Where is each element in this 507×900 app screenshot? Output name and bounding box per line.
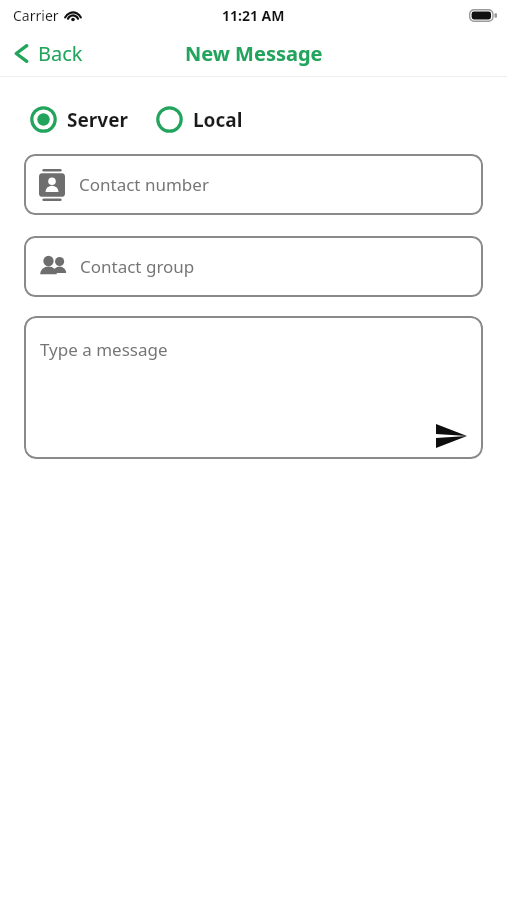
staticText: Back	[38, 40, 83, 67]
button[interactable]: Server	[26, 102, 132, 137]
staticText: Contact group	[80, 255, 195, 278]
button[interactable]: Send message	[430, 418, 473, 454]
staticText: New Message	[185, 40, 323, 67]
staticText: Local	[193, 107, 243, 133]
staticText: Contact number	[79, 173, 209, 196]
staticText: 11:21 AM	[222, 6, 285, 25]
staticText: Carrier	[13, 6, 59, 25]
button[interactable]: Contact group	[24, 236, 483, 297]
staticText: Server	[67, 107, 128, 133]
button[interactable]: Type a message	[24, 316, 483, 459]
button[interactable]: Contact number	[24, 154, 483, 215]
button[interactable]: Local	[152, 102, 247, 137]
staticText: Type a message	[40, 338, 168, 361]
button[interactable]: Back	[0, 35, 95, 72]
